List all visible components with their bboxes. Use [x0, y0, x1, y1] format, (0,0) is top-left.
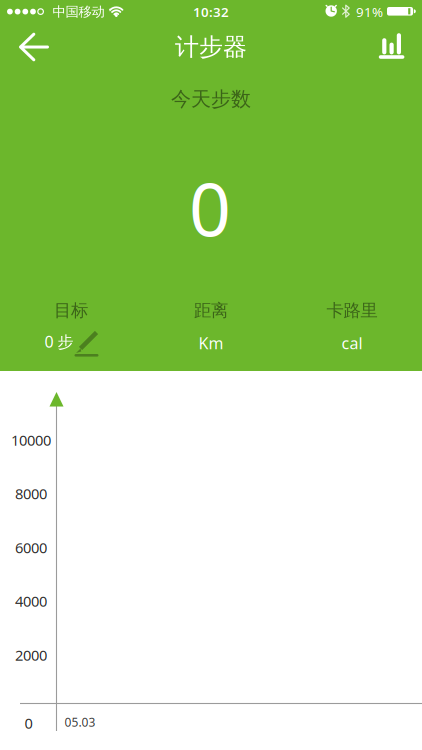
staticText: 0 步 — [44, 331, 73, 352]
staticText: 卡路里 — [326, 300, 377, 321]
staticText: 6000 — [15, 538, 47, 557]
staticText: 4000 — [15, 591, 47, 611]
staticText: 目标 — [54, 300, 88, 321]
staticText: 8000 — [15, 484, 47, 503]
staticText: 05.03 — [64, 714, 95, 730]
staticText: 0 — [24, 713, 32, 733]
staticText: 距离 — [194, 300, 228, 321]
staticText: 计步器 — [175, 32, 247, 62]
staticText: 0 — [189, 159, 231, 257]
staticText: 10000 — [11, 430, 51, 450]
button[interactable]: Statistics — [370, 24, 414, 68]
button[interactable]: Back — [11, 25, 55, 69]
button[interactable]: 0 步 — [25, 320, 105, 364]
staticText: 2000 — [15, 645, 47, 665]
staticText: 中国移动 — [52, 4, 104, 20]
staticText: Km — [198, 332, 223, 354]
staticText: cal — [341, 332, 362, 354]
staticText: 10:32 — [193, 3, 229, 21]
staticText: 今天步数 — [171, 87, 251, 111]
staticText: 91% — [356, 3, 383, 21]
